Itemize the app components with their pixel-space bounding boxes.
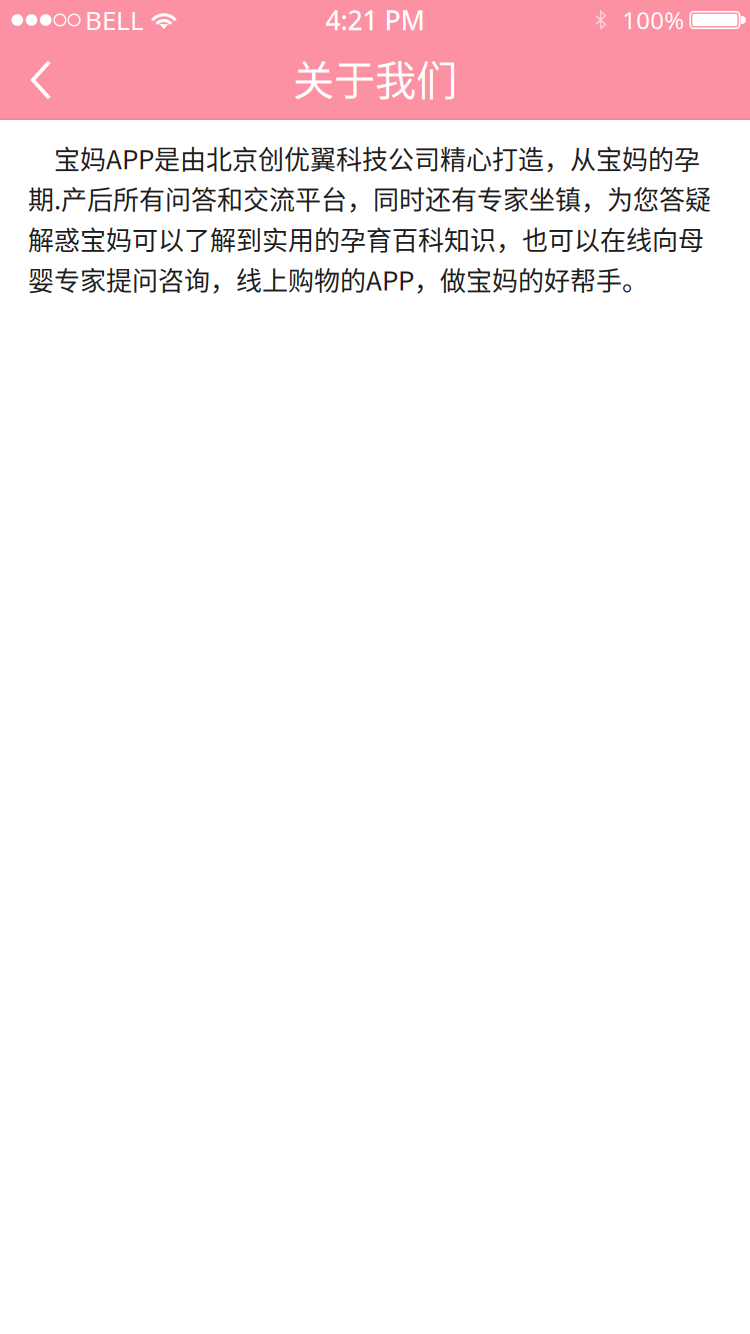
staticText: 4:21 PM	[325, 2, 424, 38]
staticText: 100%	[622, 4, 684, 36]
staticText: 关于我们	[293, 48, 457, 107]
staticText: 宝妈APP是由北京创优翼科技公司精心打造，从宝妈的孕 期.产后所有问答和交流平台…	[28, 139, 711, 298]
staticText: BELL	[85, 2, 144, 38]
button[interactable]: Back	[12, 49, 70, 111]
